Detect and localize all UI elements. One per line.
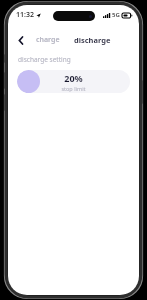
button[interactable]: charge [32, 33, 64, 47]
staticText: 20% [64, 72, 83, 84]
staticText: charge [36, 35, 60, 45]
staticText: stop limit [61, 85, 86, 92]
staticText: 11:32 [16, 10, 34, 20]
staticText: discharge [74, 35, 111, 45]
button[interactable]: 20% [17, 70, 130, 93]
button[interactable]: Back [14, 33, 28, 47]
staticText: discharge setting [18, 55, 71, 64]
button[interactable]: discharge [70, 33, 115, 47]
staticText: 5G [112, 11, 120, 19]
